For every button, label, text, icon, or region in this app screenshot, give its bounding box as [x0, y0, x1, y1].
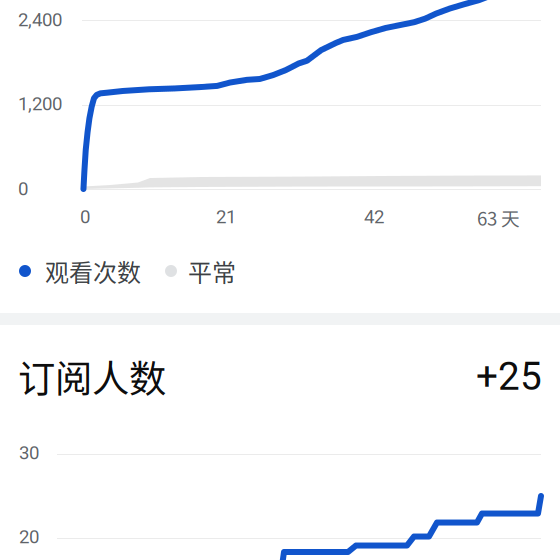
- staticText: 21: [216, 206, 236, 228]
- staticText: +25: [476, 354, 542, 399]
- staticText: 1,200: [18, 93, 62, 115]
- staticText: 30: [19, 442, 39, 464]
- staticText: 平常: [188, 254, 236, 288]
- staticText: 2,400: [18, 9, 62, 31]
- staticText: 0: [18, 178, 28, 200]
- button[interactable]: 观看次数: [19, 254, 349, 288]
- staticText: 20: [19, 526, 39, 548]
- staticText: 订阅人数: [18, 349, 166, 404]
- staticText: 0: [80, 206, 90, 228]
- staticText: 63 天: [477, 204, 520, 231]
- staticText: 观看次数: [45, 254, 141, 288]
- staticText: 42: [364, 206, 384, 228]
